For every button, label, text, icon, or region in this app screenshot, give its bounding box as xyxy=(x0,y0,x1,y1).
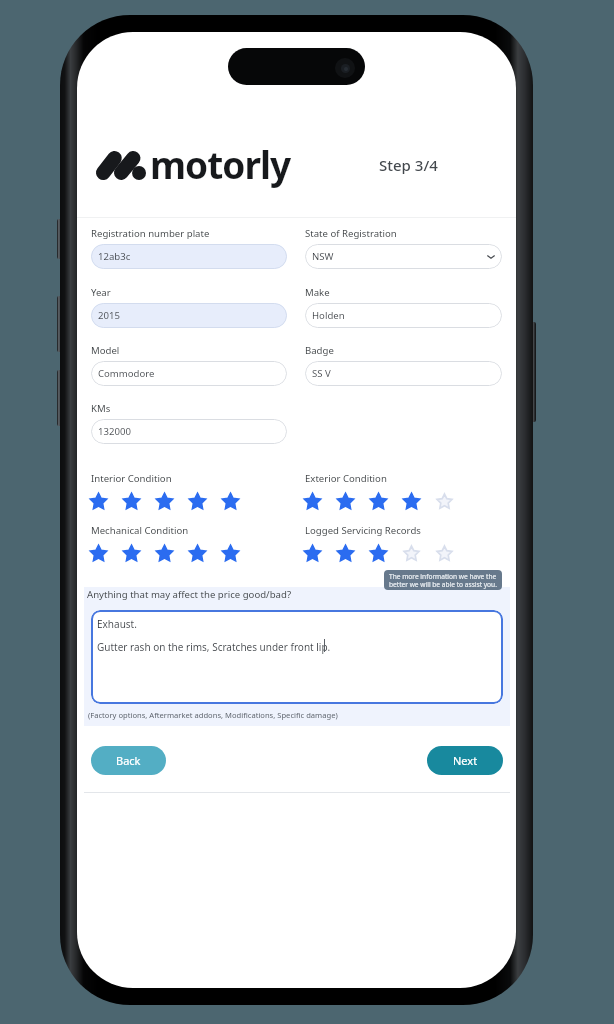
staticText: Model xyxy=(91,344,120,357)
staticText: Interior Condition xyxy=(91,472,172,485)
staticText: Exterior Condition xyxy=(305,472,387,485)
button[interactable]: Rate 3 xyxy=(370,493,403,515)
staticText: motorly xyxy=(150,139,291,189)
staticText: (Factory options, Aftermarket addons, Mo… xyxy=(88,710,338,720)
staticText: Step 3/4 xyxy=(379,155,438,175)
button[interactable]: Exhaust. xyxy=(91,610,503,704)
button[interactable]: Rate 4 xyxy=(189,493,222,515)
button[interactable]: Rate 5 xyxy=(436,493,469,515)
staticText: Commodore xyxy=(98,367,155,380)
button[interactable]: Back xyxy=(91,746,166,775)
button[interactable]: Rate 4 xyxy=(403,493,436,515)
button[interactable]: Rate 3 xyxy=(156,493,189,515)
button[interactable]: Rate 3 xyxy=(370,545,403,567)
button[interactable]: Rate 5 xyxy=(222,493,255,515)
staticText: Holden xyxy=(312,309,345,322)
staticText: Back xyxy=(116,753,141,768)
staticText: Logged Servicing Records xyxy=(305,524,421,537)
staticText: Next xyxy=(453,753,478,768)
staticText: Year xyxy=(91,286,111,299)
other: Open dropdown xyxy=(487,253,495,261)
staticText: SS V xyxy=(312,367,331,380)
button[interactable]: Rate 1 xyxy=(90,493,123,515)
staticText: KMs xyxy=(91,402,111,415)
staticText: NSW xyxy=(312,250,334,263)
button[interactable]: Rate 2 xyxy=(337,545,370,567)
button[interactable]: Rate 5 xyxy=(222,545,255,567)
button[interactable]: 2015 xyxy=(91,303,287,328)
staticText: Make xyxy=(305,286,330,299)
staticText: Badge xyxy=(305,344,334,357)
staticText: The more information we have the better … xyxy=(389,572,497,589)
button[interactable]: NSW xyxy=(305,244,502,269)
button[interactable]: Rate 1 xyxy=(90,545,123,567)
button[interactable]: Next xyxy=(427,746,503,775)
staticText: Anything that may affect the price good/… xyxy=(87,588,292,601)
staticText: Exhaust. xyxy=(97,617,137,631)
staticText: 132000 xyxy=(98,425,131,438)
button[interactable]: Rate 1 xyxy=(304,493,337,515)
button[interactable]: 12ab3c xyxy=(91,244,287,269)
button[interactable]: Rate 2 xyxy=(123,493,156,515)
button[interactable]: Rate 2 xyxy=(337,493,370,515)
staticText: Gutter rash on the rims, Scratches under… xyxy=(97,640,331,654)
button[interactable]: 132000 xyxy=(91,419,287,444)
button[interactable]: Rate 4 xyxy=(403,545,436,567)
staticText: State of Registration xyxy=(305,227,397,240)
button[interactable]: Rate 4 xyxy=(189,545,222,567)
button[interactable]: SS V xyxy=(305,361,502,386)
button[interactable]: Rate 3 xyxy=(156,545,189,567)
staticText: 2015 xyxy=(98,309,120,322)
staticText: Registration number plate xyxy=(91,227,210,240)
button[interactable]: Rate 1 xyxy=(304,545,337,567)
button[interactable]: Commodore xyxy=(91,361,287,386)
button[interactable]: Rate 5 xyxy=(436,545,469,567)
staticText: Mechanical Condition xyxy=(91,524,189,537)
staticText: 12ab3c xyxy=(98,250,131,263)
button[interactable]: Holden xyxy=(305,303,502,328)
button[interactable]: Rate 2 xyxy=(123,545,156,567)
